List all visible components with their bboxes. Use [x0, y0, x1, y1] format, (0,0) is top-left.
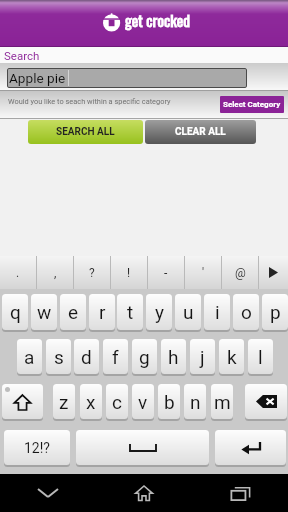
button[interactable]: @ [222, 256, 258, 289]
staticText: b [164, 391, 175, 413]
staticText: c [112, 391, 122, 413]
button[interactable]: c [106, 384, 128, 419]
button[interactable]: t [117, 294, 143, 330]
staticText: u [183, 301, 194, 323]
button[interactable]: f [103, 339, 128, 374]
staticText: e [68, 301, 79, 323]
button[interactable]: ' [185, 256, 221, 289]
button[interactable]: g [132, 339, 157, 374]
staticText: f [112, 346, 119, 368]
button[interactable]: CLEAR ALL [145, 120, 256, 144]
button[interactable]: m [211, 384, 233, 419]
staticText: t [127, 301, 134, 323]
staticText: . [16, 266, 20, 280]
button[interactable]: ? [74, 256, 110, 289]
button[interactable]: i [204, 294, 230, 330]
button[interactable]: p [262, 294, 288, 330]
button[interactable]: , [37, 256, 73, 289]
staticText: CLEAR ALL [175, 126, 226, 138]
staticText: z [59, 391, 69, 413]
staticText: m [214, 391, 231, 413]
staticText: h [168, 346, 179, 368]
staticText: y [155, 301, 164, 323]
button[interactable]: a [17, 339, 42, 374]
button[interactable]: Recent apps [192, 474, 288, 512]
staticText: l [258, 346, 263, 368]
button[interactable]: - [148, 256, 184, 289]
button[interactable]: z [53, 384, 75, 419]
button[interactable]: x [80, 384, 102, 419]
button[interactable]: r [89, 294, 115, 330]
staticText: @ [235, 266, 246, 280]
button[interactable]: ! [111, 256, 147, 289]
button[interactable]: w [31, 294, 57, 330]
button[interactable]: k [219, 339, 244, 374]
staticText: 12!? [24, 440, 50, 456]
button[interactable]: Apple pie [7, 68, 247, 88]
button[interactable]: h [161, 339, 186, 374]
staticText: ? [89, 266, 95, 280]
staticText: Would you like to seach within a specifi… [8, 97, 171, 106]
button[interactable]: n [184, 384, 206, 419]
button[interactable]: s [46, 339, 71, 374]
staticText: q [10, 301, 21, 323]
button[interactable]: SEARCH ALL [28, 120, 143, 144]
button[interactable]: d [74, 339, 99, 374]
staticText: g [139, 346, 150, 368]
button[interactable]: Home [96, 474, 192, 512]
staticText: j [200, 346, 205, 368]
staticText: SEARCH ALL [56, 126, 115, 138]
staticText: s [54, 346, 64, 368]
staticText: v [138, 391, 148, 413]
staticText: i [215, 301, 220, 323]
staticText: Apple pie [9, 70, 66, 86]
staticText: r [99, 301, 106, 323]
staticText: ! [127, 266, 131, 280]
staticText: , [54, 266, 57, 280]
button[interactable]: Shift [2, 384, 43, 419]
button[interactable]: . [0, 256, 36, 289]
button[interactable]: Backspace [245, 384, 287, 419]
button[interactable]: More symbols [259, 256, 288, 289]
staticText: a [24, 346, 35, 368]
staticText: k [227, 346, 237, 368]
button[interactable]: l [248, 339, 273, 374]
button[interactable]: 12!? [4, 430, 70, 465]
button[interactable]: Back [0, 474, 96, 512]
button[interactable]: e [60, 294, 86, 330]
button[interactable]: o [233, 294, 259, 330]
button[interactable]: Space [76, 430, 209, 465]
staticText: o [241, 301, 252, 323]
button[interactable]: v [132, 384, 154, 419]
staticText: - [164, 266, 168, 280]
button[interactable]: Enter [215, 430, 286, 465]
staticText: d [81, 346, 92, 368]
staticText: ' [202, 266, 205, 280]
staticText: Select Category [223, 100, 281, 109]
staticText: get crocked [125, 9, 190, 32]
button[interactable]: j [190, 339, 215, 374]
staticText: x [86, 391, 96, 413]
button[interactable]: Select Category [220, 96, 284, 113]
button[interactable]: y [146, 294, 172, 330]
staticText: p [270, 301, 281, 323]
button[interactable]: q [2, 294, 28, 330]
button[interactable]: u [175, 294, 201, 330]
staticText: n [190, 391, 201, 413]
button[interactable]: b [158, 384, 180, 419]
staticText: w [37, 301, 52, 323]
staticText: Search [4, 49, 40, 62]
